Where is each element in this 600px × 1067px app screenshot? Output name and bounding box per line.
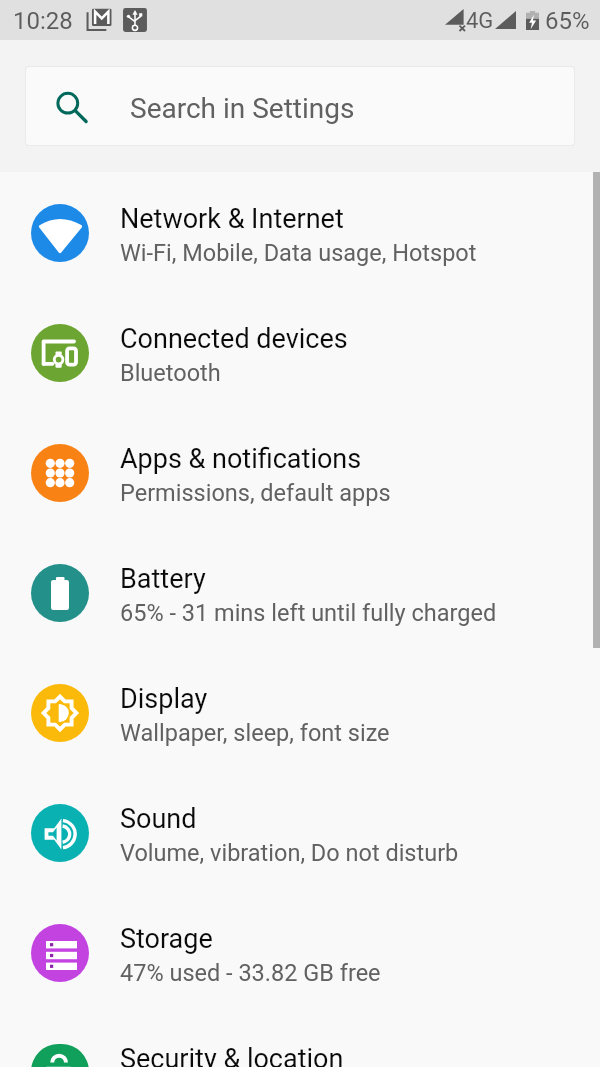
staticText: 65% [545, 7, 590, 35]
button[interactable]: Battery [0, 532, 600, 652]
staticText: Battery [120, 563, 590, 595]
staticText: Storage [120, 923, 590, 955]
staticText: Connected devices [120, 323, 590, 355]
staticText: Wi-Fi, Mobile, Data usage, Hotspot [120, 239, 590, 267]
staticText: Bluetooth [120, 359, 590, 387]
button[interactable]: Connected devices [0, 292, 600, 412]
staticText: 65% - 31 mins left until fully charged [120, 599, 590, 627]
staticText: Security & location [120, 1043, 590, 1067]
staticText: Apps & notifications [120, 443, 590, 475]
button[interactable]: Network & Internet [0, 172, 600, 292]
button[interactable]: Search [26, 67, 574, 145]
button[interactable]: Apps & notifications [0, 412, 600, 532]
staticText: 47% used - 33.82 GB free [120, 959, 590, 987]
staticText: 10:28 [13, 7, 73, 35]
button[interactable]: Sound [0, 772, 600, 892]
staticText: Network & Internet [120, 203, 590, 235]
staticText: Volume, vibration, Do not disturb [120, 839, 590, 867]
staticText: Wallpaper, sleep, font size [120, 719, 590, 747]
staticText: Search in Settings [130, 92, 355, 125]
button[interactable]: Storage [0, 892, 600, 1012]
staticText: Permissions, default apps [120, 479, 590, 507]
staticText: Display [120, 683, 590, 715]
staticText: Sound [120, 803, 590, 835]
button[interactable]: Security & location [0, 1012, 600, 1067]
staticText: 4G [466, 8, 494, 34]
other: Search [57, 93, 87, 123]
button[interactable]: Display [0, 652, 600, 772]
